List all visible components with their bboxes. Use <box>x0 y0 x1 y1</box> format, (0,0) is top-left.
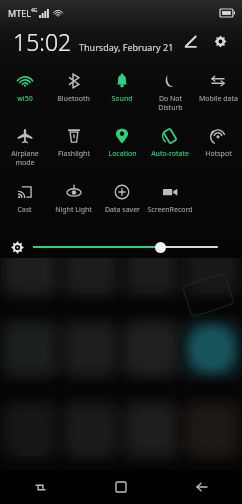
staticText: Do Not Disturb <box>158 94 183 112</box>
button[interactable]: Sound <box>98 64 146 119</box>
staticText: Hotspot <box>205 149 232 159</box>
staticText: wi50 <box>17 94 33 104</box>
staticText: Cast <box>17 205 32 215</box>
button[interactable]: Night Light <box>49 175 98 227</box>
staticText: 4G <box>31 7 38 14</box>
staticText: Sound <box>111 94 133 104</box>
button[interactable]: Flashlight <box>49 119 98 175</box>
staticText: Flashlight <box>58 149 90 159</box>
button[interactable]: Edit <box>178 29 202 53</box>
staticText: Mobile data <box>199 94 238 104</box>
staticText: Data saver <box>105 205 140 215</box>
staticText: Bluetooth <box>57 94 90 104</box>
button[interactable]: Data saver <box>98 175 146 227</box>
button[interactable]: ScreenRecord <box>146 175 194 227</box>
staticText: Night Light <box>55 205 92 215</box>
staticText: Auto-rotate <box>151 149 189 159</box>
button[interactable]: Back <box>161 470 242 504</box>
staticText: ScreenRecord <box>147 205 193 215</box>
staticText: Airplane mode <box>11 149 39 167</box>
staticText: 15:02 <box>13 26 72 56</box>
button[interactable]: Settings <box>208 29 232 53</box>
button[interactable]: Mobile data <box>194 64 242 119</box>
staticText: Thursday, February 21 <box>79 41 174 53</box>
button[interactable]: Auto-rotate <box>146 119 194 175</box>
button[interactable]: Recents <box>0 470 80 504</box>
button[interactable]: Hotspot <box>194 119 242 175</box>
button[interactable]: Airplane mode <box>0 119 49 175</box>
button[interactable]: Bluetooth <box>49 64 98 119</box>
staticText: MTEL <box>8 7 31 19</box>
button[interactable]: Location <box>98 119 146 175</box>
button[interactable]: Do Not Disturb <box>146 64 194 119</box>
button[interactable]: wi50 <box>0 64 49 119</box>
staticText: Location <box>108 149 137 159</box>
button[interactable]: Home <box>80 470 161 504</box>
button[interactable]: Cast <box>0 175 49 227</box>
button[interactable]: Brightness <box>0 233 242 261</box>
